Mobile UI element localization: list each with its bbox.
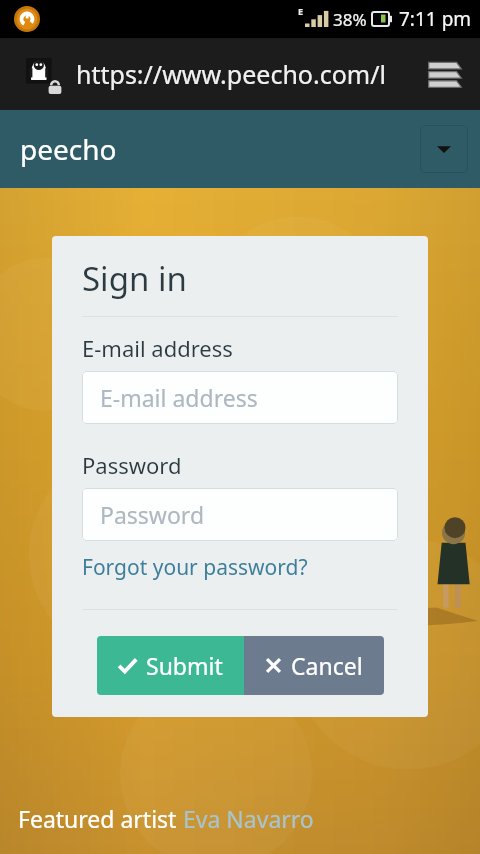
button[interactable]: Menu bbox=[420, 125, 468, 173]
button[interactable]: Submit bbox=[97, 636, 244, 695]
button[interactable]: E-mail address bbox=[82, 371, 398, 424]
staticText: https://www.peecho.com/l bbox=[76, 57, 386, 91]
staticText: Cancel bbox=[291, 650, 363, 681]
staticText: Password bbox=[82, 450, 182, 480]
button[interactable]: Password bbox=[82, 488, 398, 541]
button[interactable]: Tabs bbox=[418, 47, 472, 101]
staticText: E bbox=[298, 5, 304, 17]
staticText: Submit bbox=[146, 650, 223, 681]
button[interactable]: Forgot your password? bbox=[82, 553, 308, 582]
staticText: E-mail address bbox=[82, 333, 233, 363]
staticText: Sign in bbox=[82, 256, 187, 301]
staticText: 38% bbox=[333, 8, 367, 31]
button[interactable]: peecho bbox=[20, 130, 117, 168]
staticText: Featured artist bbox=[18, 803, 183, 834]
button[interactable]: Cancel bbox=[244, 636, 384, 695]
staticText: 7:11 pm bbox=[399, 6, 472, 32]
button[interactable]: Eva Navarro bbox=[183, 803, 314, 834]
staticText: Password bbox=[100, 499, 205, 530]
staticText: E-mail address bbox=[100, 382, 258, 413]
